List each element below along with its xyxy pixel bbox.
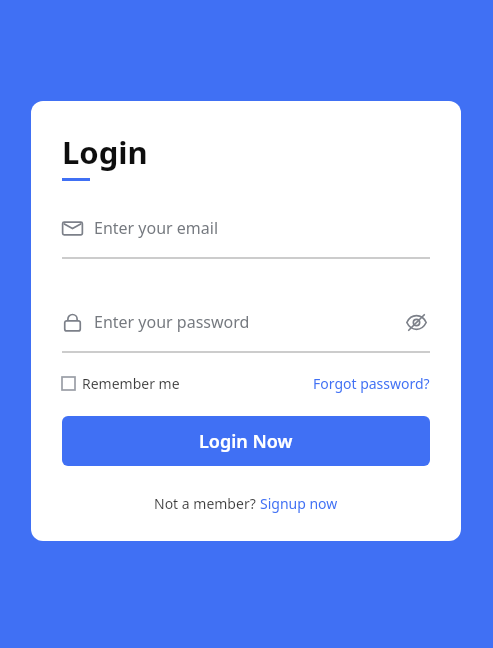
staticText: Remember me bbox=[82, 374, 180, 393]
button[interactable]: Signup now bbox=[260, 494, 338, 513]
other: Email bbox=[62, 218, 83, 239]
button[interactable]: Show password bbox=[402, 308, 430, 336]
staticText: Forgot password? bbox=[313, 374, 430, 393]
button[interactable]: Forgot password? bbox=[313, 374, 430, 393]
staticText: Login bbox=[62, 131, 148, 173]
staticText: Signup now bbox=[260, 494, 338, 513]
staticText: Enter your email bbox=[94, 217, 219, 239]
staticText: Not a member? bbox=[154, 494, 260, 513]
button[interactable]: Email bbox=[62, 211, 430, 245]
button[interactable]: Password bbox=[62, 305, 430, 339]
button[interactable]: Login Now bbox=[62, 416, 430, 466]
staticText: Enter your password bbox=[94, 311, 250, 333]
other: Password bbox=[62, 312, 83, 333]
button[interactable]: Remember me bbox=[62, 374, 180, 393]
staticText: Login Now bbox=[199, 429, 293, 454]
